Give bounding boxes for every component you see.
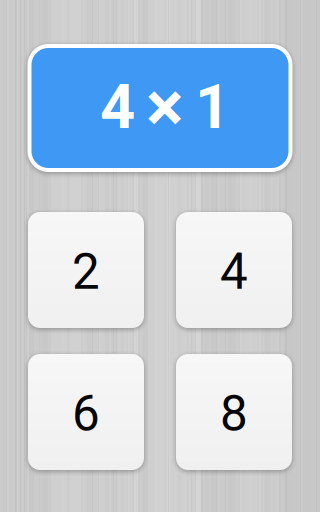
button[interactable]: 6 [28, 354, 144, 470]
staticText: 1 [195, 71, 230, 143]
button[interactable]: 8 [176, 354, 292, 470]
button[interactable]: 4 [176, 212, 292, 328]
staticText: 4 [220, 243, 248, 301]
button[interactable]: 4 [27, 44, 292, 172]
staticText: 2 [72, 243, 100, 301]
staticText: 4 [100, 71, 135, 143]
button[interactable]: 2 [28, 212, 144, 328]
staticText: 6 [72, 385, 100, 443]
staticText: 8 [220, 385, 248, 443]
staticText: × [146, 66, 184, 148]
